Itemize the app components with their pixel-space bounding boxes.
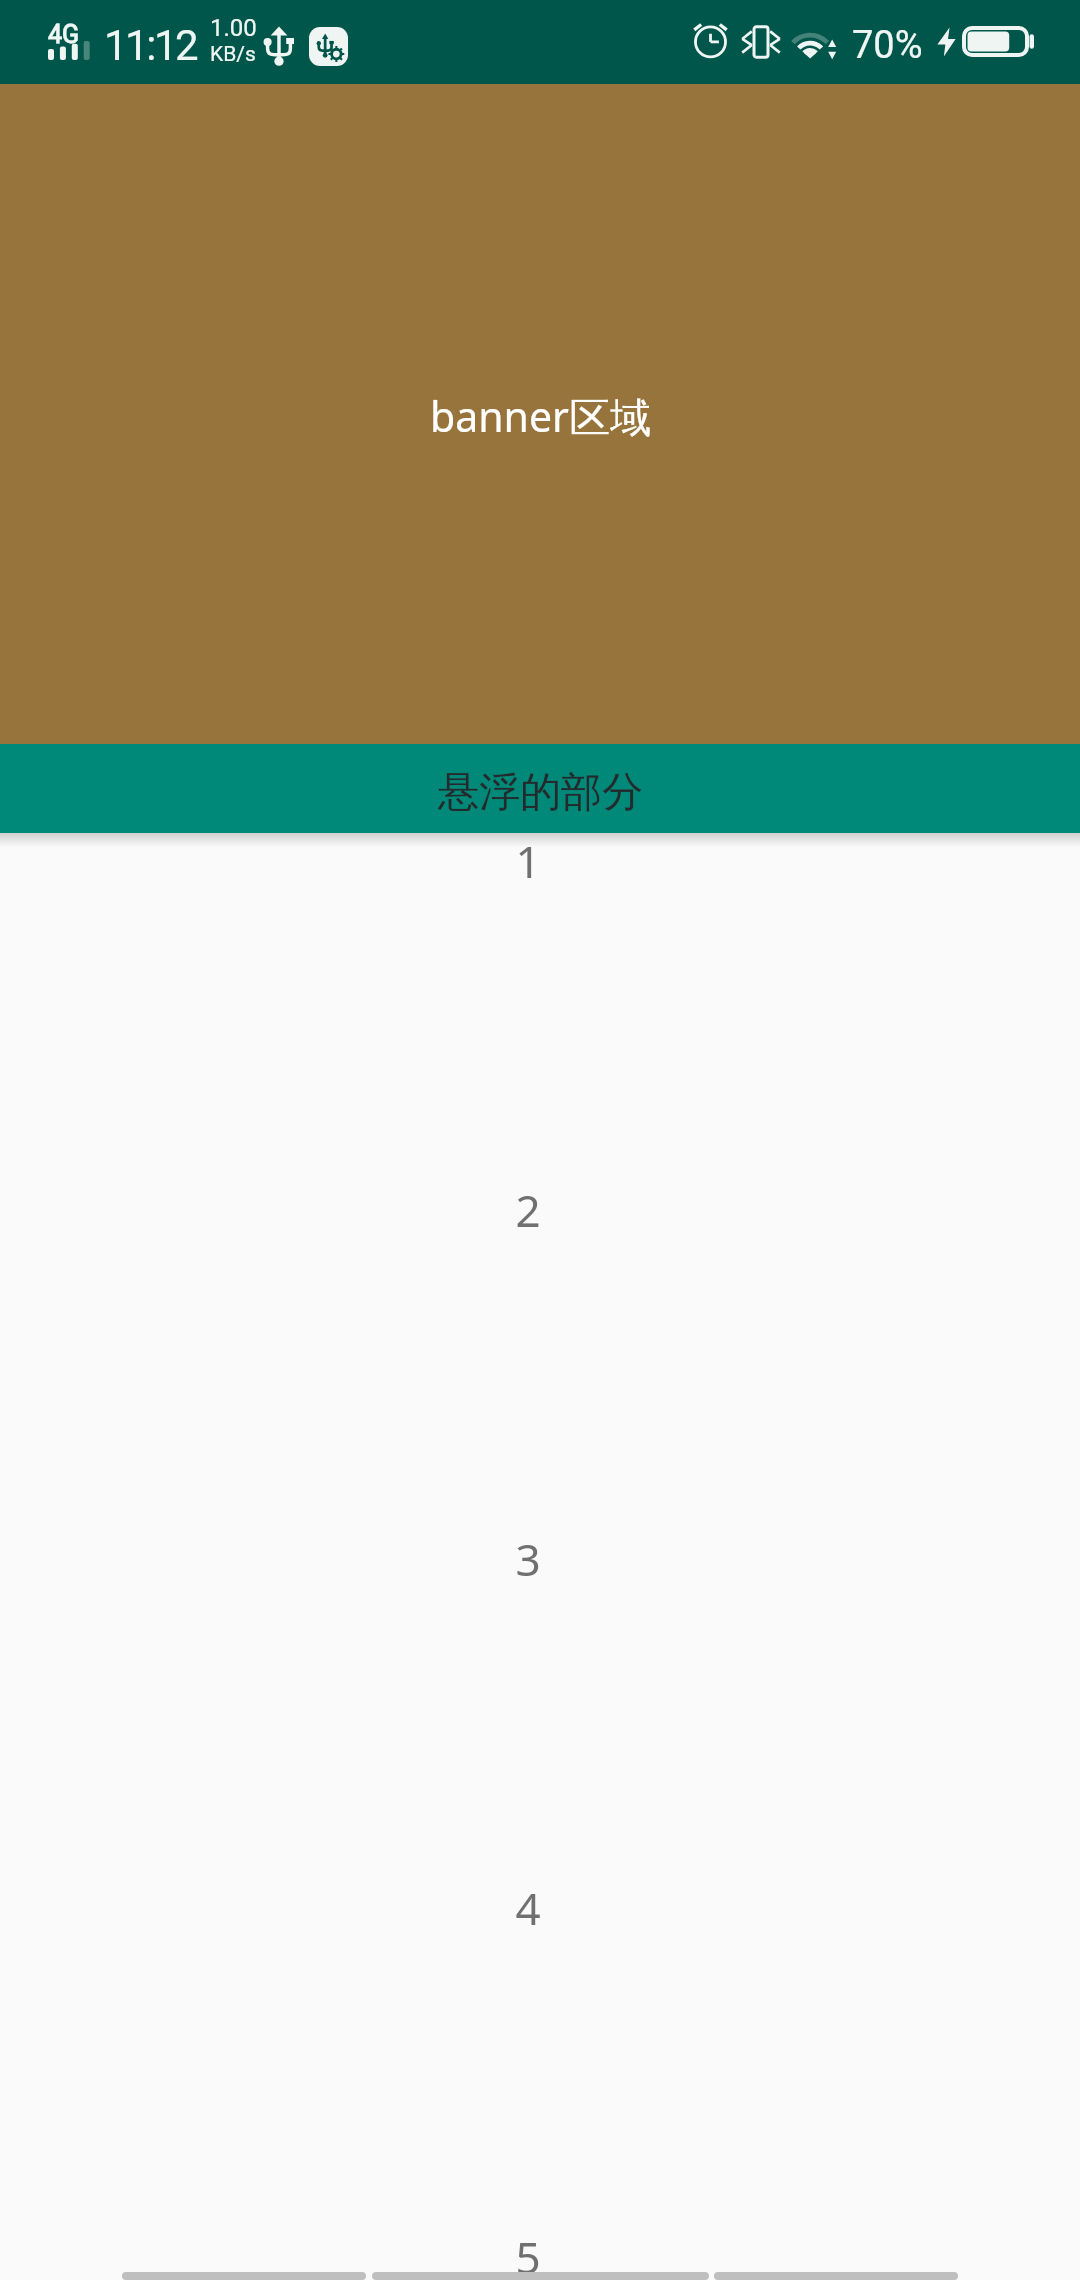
staticText: 5 (515, 2227, 541, 2278)
button[interactable]: 悬浮的部分 (0, 744, 1080, 833)
staticText: 4 (515, 1878, 541, 1938)
other: USB connected (264, 26, 294, 66)
staticText: 4G (48, 20, 80, 49)
other: Alarm set (694, 21, 727, 57)
staticText: 70% (852, 23, 923, 68)
staticText: 悬浮的部分 (438, 767, 643, 819)
other: Navigation bar (0, 2264, 1080, 2280)
other: 4G signal, 3 bars (48, 24, 90, 60)
staticText: KB/s (210, 42, 256, 67)
staticText: 2 (515, 1180, 541, 1240)
staticText: 1 (515, 831, 541, 891)
button[interactable]: 3 (0, 1531, 1080, 1880)
other: Wi-Fi connected (792, 24, 839, 60)
staticText: 1.00 (210, 14, 257, 42)
staticText: 11:12 (104, 21, 197, 70)
other: Ringer on vibrate (741, 23, 781, 61)
staticText: 3 (515, 1529, 541, 1589)
staticText: banner区域 (430, 388, 651, 444)
button[interactable]: 2 (0, 1182, 1080, 1531)
other: USB preferences (309, 27, 348, 66)
button[interactable]: 5 (0, 2229, 1080, 2280)
other: Battery 70 percent, charging (962, 26, 1034, 57)
other: Charging (937, 27, 956, 57)
button[interactable]: 4 (0, 1880, 1080, 2229)
button[interactable]: banner区域 (0, 84, 1080, 744)
button[interactable]: 1 (0, 833, 1080, 1182)
